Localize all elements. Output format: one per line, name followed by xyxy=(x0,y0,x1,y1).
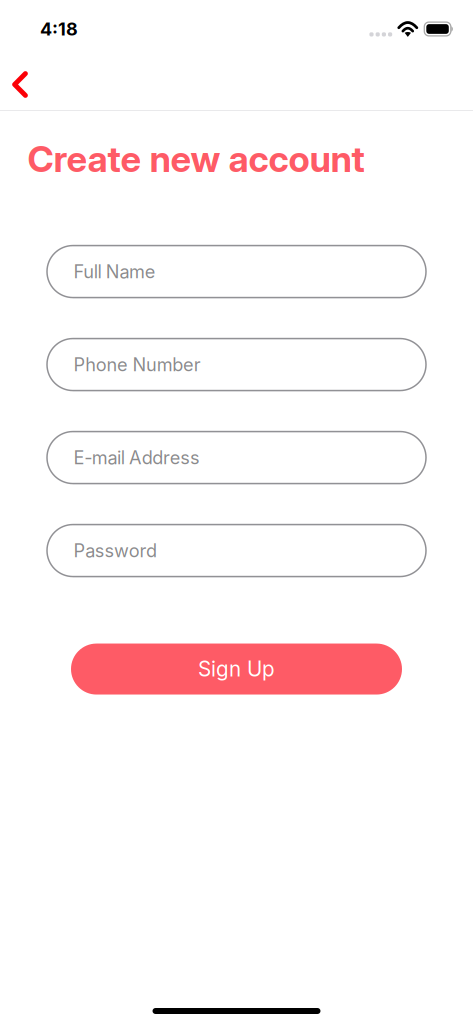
button[interactable]: Back xyxy=(0,58,44,111)
button[interactable]: E-mail Address xyxy=(47,432,426,484)
button[interactable]: Phone Number xyxy=(47,339,426,391)
staticText: Sign Up xyxy=(198,657,275,682)
staticText: Phone Number xyxy=(73,354,201,375)
staticText: E-mail Address xyxy=(73,447,200,468)
button[interactable]: Password xyxy=(47,525,426,577)
staticText: Password xyxy=(73,540,157,561)
staticText: Full Name xyxy=(73,261,156,282)
staticText: Create new account xyxy=(27,137,364,181)
button[interactable]: Sign Up xyxy=(71,644,402,695)
staticText: 4:18 xyxy=(40,18,78,40)
button[interactable]: Full Name xyxy=(47,246,426,298)
